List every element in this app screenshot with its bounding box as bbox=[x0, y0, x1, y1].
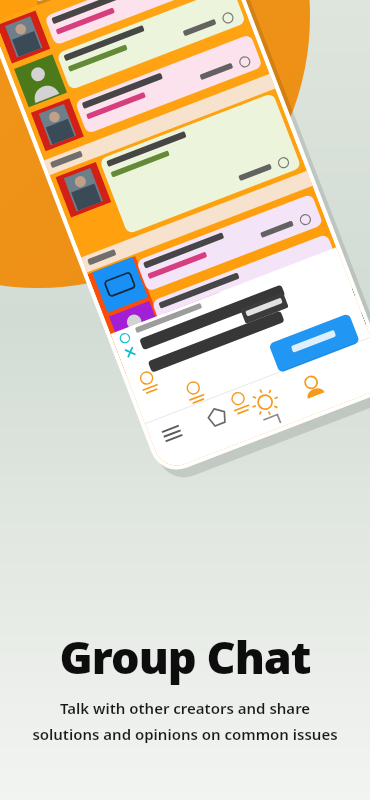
other: Group chat screen preview bbox=[0, 0, 370, 800]
button[interactable]: Group Chat bbox=[0, 626, 370, 745]
staticText: Talk with other creators and share solut… bbox=[32, 698, 338, 745]
staticText: Group Chat bbox=[59, 626, 311, 687]
